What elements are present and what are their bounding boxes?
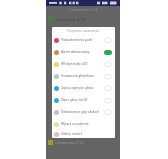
button[interactable]: Zapisz wykrycie głosu [52,82,115,94]
staticText: Alarm włamaniowy [61,50,90,54]
staticText: Urzadzenie ALFA [56,17,86,22]
staticText: Przydatne ustawienia [67,29,100,33]
staticText: Zdalny restart [61,132,82,136]
staticText: Ustawienia v1.52 [55,140,84,145]
button[interactable]: Zdalny restart [52,130,115,138]
staticText: Powiadomienia push [61,38,93,42]
staticText: Wł./wył diody LED [61,62,88,66]
staticText: Zapis głosu na SD [61,98,88,102]
button[interactable]: Zapis głosu na SD [52,94,115,106]
staticText: Wyłącz urządzenie [61,122,89,126]
staticText: Ustawienia v1.52 [69,7,98,12]
button[interactable]: Powiadomienia push [52,34,115,46]
button[interactable]: Wyłącz urządzenie [52,118,115,130]
button[interactable]: Odtwarzanie gdy odsłuch [52,106,115,118]
staticText: Zapisz wykrycie głosu [61,86,94,90]
button[interactable]: Alarm włamaniowy [52,46,115,58]
staticText: Ustawienia głośników [61,74,94,78]
button[interactable]: Ustawienia głośników [52,70,115,82]
button[interactable]: Wł./wył diody LED [52,58,115,70]
staticText: Odtwarzanie gdy odsłuch [61,110,99,114]
